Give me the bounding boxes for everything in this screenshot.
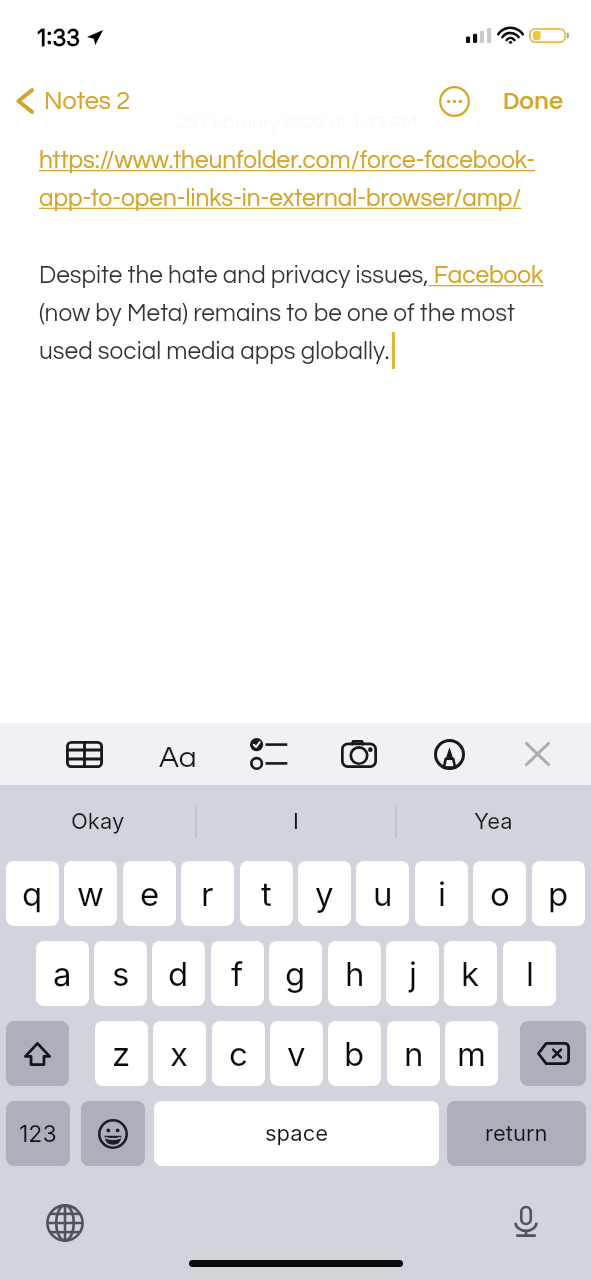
staticText: f: [231, 954, 244, 994]
button[interactable]: Yea: [433, 785, 553, 858]
button[interactable]: e: [123, 861, 176, 926]
button[interactable]: q: [6, 861, 59, 926]
button[interactable]: return: [447, 1101, 586, 1166]
button[interactable]: Close: [509, 723, 565, 785]
button[interactable]: a: [36, 941, 89, 1006]
button[interactable]: g: [269, 941, 322, 1006]
staticText: I: [293, 808, 299, 835]
staticText: n: [404, 1034, 424, 1074]
staticText: https://www.theunfolder.com/force-facebo…: [39, 148, 536, 211]
staticText: i: [438, 874, 446, 914]
button[interactable]: Table: [56, 723, 112, 785]
button[interactable]: b: [328, 1021, 381, 1086]
staticText: u: [373, 874, 393, 914]
button[interactable]: Done: [503, 85, 564, 117]
staticText: m: [457, 1034, 486, 1074]
button[interactable]: I: [236, 785, 356, 858]
button[interactable]: s: [94, 941, 147, 1006]
button[interactable]: Shift: [6, 1021, 69, 1086]
staticText: t: [261, 874, 272, 914]
staticText: return: [485, 1120, 548, 1147]
button[interactable]: Format text: [150, 723, 206, 785]
staticText: r: [201, 874, 214, 914]
staticText: space: [265, 1120, 329, 1147]
button[interactable]: v: [270, 1021, 323, 1086]
button[interactable]: c: [212, 1021, 265, 1086]
button[interactable]: Backspace: [520, 1021, 586, 1086]
button[interactable]: t: [240, 861, 293, 926]
staticText: Despite the hate and privacy issues, Fac…: [39, 263, 544, 364]
staticText: Yea: [474, 808, 513, 835]
button[interactable]: k: [444, 941, 497, 1006]
button[interactable]: h: [328, 941, 381, 1006]
button[interactable]: Numbers: [6, 1101, 70, 1166]
button[interactable]: Okay: [38, 785, 158, 858]
staticText: Okay: [71, 808, 125, 835]
staticText: w: [77, 874, 105, 914]
staticText: x: [170, 1034, 189, 1074]
button[interactable]: Notes 2: [14, 88, 131, 114]
staticText: c: [229, 1034, 248, 1074]
staticText: 123: [19, 1120, 57, 1148]
staticText: a: [53, 954, 72, 994]
staticText: l: [526, 954, 534, 994]
staticText: 1:33: [37, 24, 80, 52]
button[interactable]: y: [298, 861, 351, 926]
button[interactable]: n: [387, 1021, 440, 1086]
staticText: q: [22, 874, 43, 914]
staticText: g: [285, 954, 306, 994]
staticText: y: [315, 874, 334, 914]
staticText: j: [409, 954, 417, 994]
button[interactable]: j: [386, 941, 439, 1006]
button[interactable]: r: [181, 861, 234, 926]
button[interactable]: m: [445, 1021, 498, 1086]
button[interactable]: p: [532, 861, 585, 926]
staticText: p: [548, 874, 569, 914]
button[interactable]: f: [211, 941, 264, 1006]
staticText: Done: [503, 85, 564, 117]
staticText: o: [490, 874, 510, 914]
button[interactable]: d: [152, 941, 205, 1006]
staticText: d: [168, 954, 189, 994]
button[interactable]: u: [356, 861, 409, 926]
button[interactable]: space: [154, 1101, 439, 1166]
staticText: v: [287, 1034, 306, 1074]
button[interactable]: Checklist: [240, 723, 296, 785]
staticText: s: [112, 954, 130, 994]
button[interactable]: x: [153, 1021, 206, 1086]
button[interactable]: i: [415, 861, 468, 926]
button[interactable]: z: [95, 1021, 148, 1086]
staticText: Notes 2: [44, 88, 131, 114]
button[interactable]: l: [503, 941, 556, 1006]
staticText: z: [112, 1034, 131, 1074]
staticText: Aa: [159, 742, 197, 773]
staticText: h: [345, 954, 365, 994]
button[interactable]: More options: [437, 84, 471, 118]
staticText: k: [461, 954, 480, 994]
button[interactable]: o: [473, 861, 526, 926]
button[interactable]: Emoji: [81, 1101, 145, 1166]
button[interactable]: Markup: [421, 723, 477, 785]
button[interactable]: Dictation: [507, 1202, 545, 1240]
staticText: e: [140, 874, 160, 914]
button[interactable]: Camera: [331, 723, 387, 785]
staticText: b: [344, 1034, 365, 1074]
button[interactable]: w: [64, 861, 117, 926]
button[interactable]: Change keyboard: [46, 1204, 84, 1242]
